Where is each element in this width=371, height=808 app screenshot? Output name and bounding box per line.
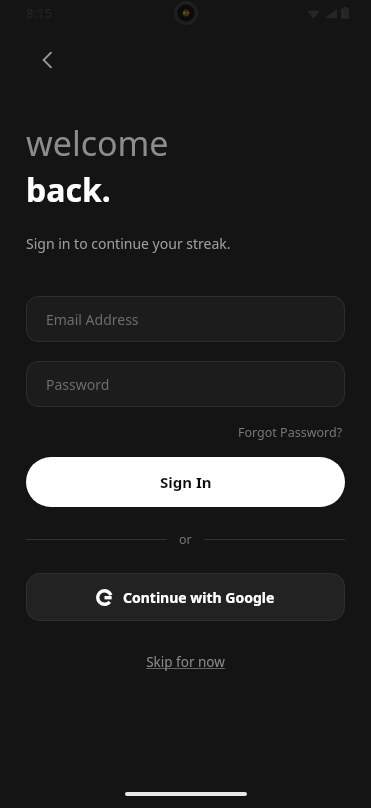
staticText: Email Address	[46, 310, 139, 329]
button[interactable]: Forgot Password?	[236, 422, 345, 443]
staticText: back.	[26, 168, 111, 212]
staticText: Sign in to continue your streak.	[26, 234, 231, 253]
button[interactable]: Sign In	[26, 457, 345, 507]
button[interactable]: Password	[26, 361, 345, 407]
staticText: 8:15	[26, 4, 52, 22]
staticText: Password	[46, 375, 110, 394]
staticText: Continue with Google	[123, 588, 275, 607]
button[interactable]: Continue with Google	[26, 573, 345, 621]
staticText: Skip for now	[146, 653, 225, 671]
button[interactable]: Back	[26, 38, 70, 82]
button[interactable]: Skip for now	[140, 649, 231, 675]
staticText: or	[179, 531, 192, 548]
staticText: welcome	[26, 120, 169, 166]
button[interactable]: Email Address	[26, 296, 345, 342]
staticText: Sign In	[160, 472, 212, 492]
staticText: Forgot Password?	[238, 424, 343, 441]
